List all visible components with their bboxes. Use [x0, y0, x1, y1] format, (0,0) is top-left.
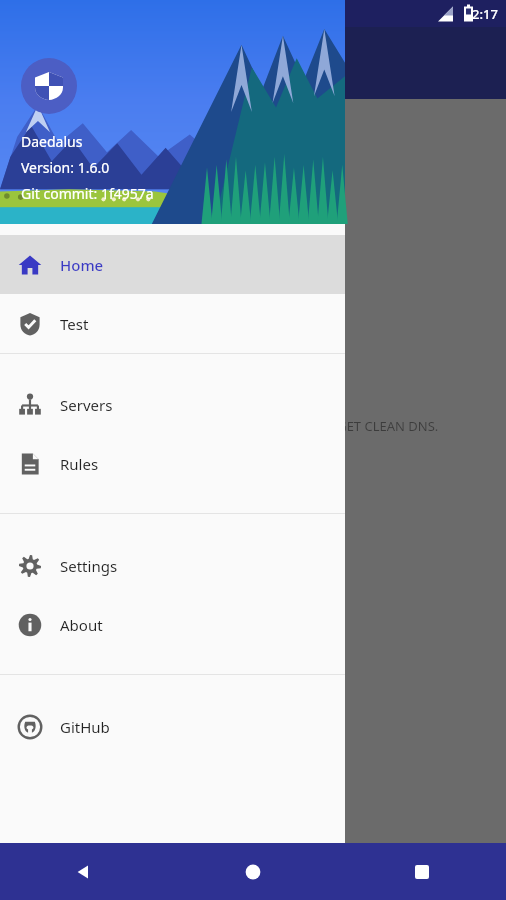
staticText: 2:17	[472, 5, 498, 23]
button[interactable]: Recent apps	[337, 843, 506, 900]
staticText: BLOCK ADS AND GET CLEAN DNS.	[233, 417, 439, 435]
button[interactable]: Settings	[0, 536, 345, 595]
button[interactable]: GitHub	[0, 697, 345, 756]
staticText: Home	[60, 255, 104, 275]
staticText: Version: 1.6.0	[21, 158, 110, 177]
button[interactable]: Servers	[0, 375, 345, 434]
button[interactable]: About	[0, 595, 345, 654]
staticText: About	[60, 615, 103, 635]
button[interactable]: Home	[168, 843, 337, 900]
button[interactable]: Back	[0, 843, 168, 900]
button[interactable]: Home	[0, 235, 345, 294]
staticText: Git commit: 1f4957a	[21, 184, 154, 203]
staticText: Daedalus	[21, 132, 83, 151]
staticText: Rules	[60, 454, 99, 474]
staticText: Servers	[60, 395, 113, 415]
button[interactable]: Rules	[0, 434, 345, 493]
staticText: GitHub	[60, 717, 110, 737]
button[interactable]: Daedalus	[0, 0, 345, 224]
staticText: Test	[60, 314, 89, 334]
staticText: Settings	[60, 556, 118, 576]
button[interactable]: Test	[0, 294, 345, 353]
